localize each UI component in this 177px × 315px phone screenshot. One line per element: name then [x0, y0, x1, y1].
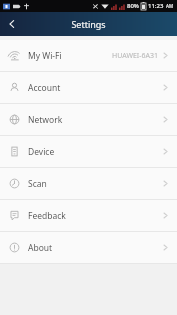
- button[interactable]: My Wi-Fi: [0, 40, 177, 71]
- button[interactable]: About: [0, 232, 177, 263]
- staticText: My Wi-Fi: [28, 50, 62, 62]
- staticText: Feedback: [28, 210, 66, 222]
- button[interactable]: Device: [0, 136, 177, 167]
- staticText: About: [28, 242, 53, 254]
- button[interactable]: Back: [0, 12, 24, 36]
- button[interactable]: Scan: [0, 168, 177, 199]
- staticText: 80%: [127, 2, 139, 10]
- staticText: AM: [166, 3, 174, 9]
- button[interactable]: Feedback: [0, 200, 177, 231]
- button[interactable]: Account: [0, 72, 177, 103]
- staticText: HUAWEI-6A31: [112, 51, 158, 61]
- staticText: Device: [28, 146, 55, 158]
- staticText: Scan: [28, 178, 47, 190]
- staticText: Settings: [71, 18, 106, 30]
- staticText: Network: [28, 114, 63, 126]
- button[interactable]: Network: [0, 104, 177, 135]
- staticText: Account: [28, 82, 61, 94]
- staticText: 11:23: [148, 2, 164, 10]
